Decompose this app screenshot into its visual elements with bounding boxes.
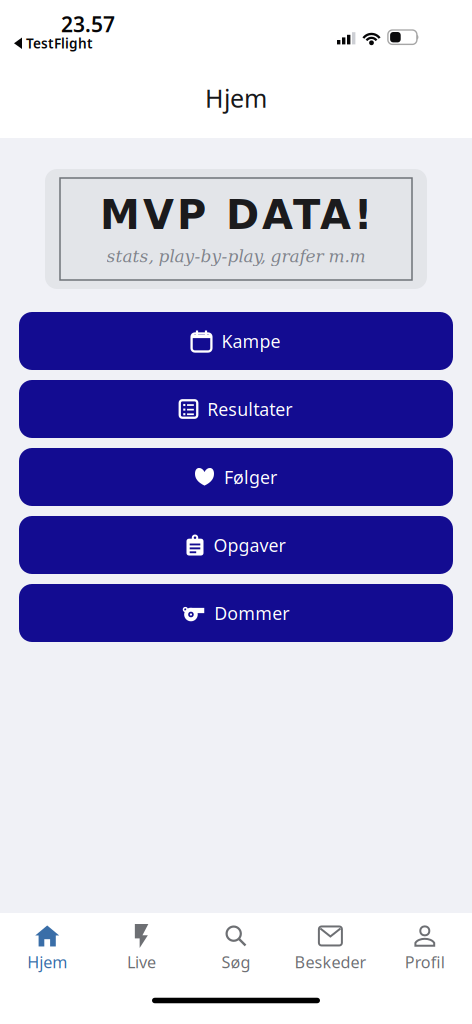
button[interactable]: Live — [94, 924, 189, 974]
staticText: Følger — [224, 465, 277, 489]
staticText: Opgaver — [213, 533, 285, 557]
staticText: Hjem — [27, 951, 67, 973]
button[interactable]: Opgaver — [19, 516, 453, 574]
staticText: Profil — [405, 951, 445, 973]
staticText: TestFlight — [26, 34, 93, 52]
staticText: 23.57 — [61, 10, 115, 38]
staticText: Kampe — [221, 329, 280, 353]
button[interactable]: Dommer — [19, 584, 453, 642]
button[interactable]: Resultater — [19, 380, 453, 438]
button[interactable]: Beskeder — [283, 924, 378, 974]
staticText: MVP DATA! — [100, 192, 372, 238]
button[interactable]: Kampe — [19, 312, 453, 370]
staticText: Beskeder — [294, 951, 366, 973]
button[interactable]: Hjem — [0, 924, 94, 974]
staticText: stats, play-by-play, grafer m.m — [106, 246, 365, 266]
staticText: Hjem — [205, 81, 267, 115]
staticText: Dommer — [214, 601, 289, 625]
button[interactable]: Følger — [19, 448, 453, 506]
staticText: Søg — [221, 951, 250, 973]
button[interactable]: Profil — [378, 924, 472, 974]
staticText: Resultater — [207, 397, 292, 421]
button[interactable]: Søg — [189, 924, 283, 974]
staticText: Live — [127, 951, 156, 973]
